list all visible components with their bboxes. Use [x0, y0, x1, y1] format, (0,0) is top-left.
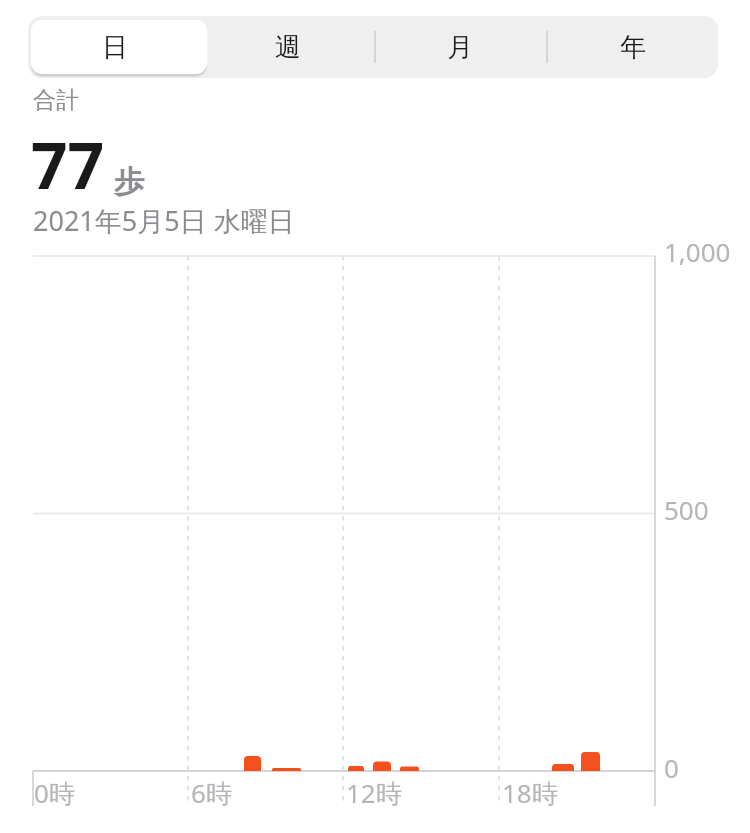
staticText: 2021年5月5日 水曜日 [33, 202, 295, 239]
staticText: 歩 [114, 163, 144, 201]
button[interactable]: 月 [373, 16, 546, 78]
staticText: 77 [31, 121, 105, 208]
staticText: 18時 [502, 775, 558, 811]
staticText: 1,000 [664, 234, 731, 269]
staticText: 12時 [346, 775, 402, 811]
staticText: 週 [275, 31, 301, 64]
staticText: 月 [447, 31, 473, 64]
staticText: 日 [102, 31, 128, 64]
button[interactable]: 日 [28, 16, 201, 78]
staticText: 6時 [191, 775, 232, 811]
staticText: 0 [664, 750, 679, 785]
staticText: 0時 [34, 775, 75, 811]
staticText: 合計 [33, 86, 79, 115]
button[interactable]: 年 [546, 16, 718, 78]
button[interactable]: 週 [201, 16, 374, 78]
staticText: 500 [664, 492, 709, 527]
staticText: 年 [620, 31, 646, 64]
